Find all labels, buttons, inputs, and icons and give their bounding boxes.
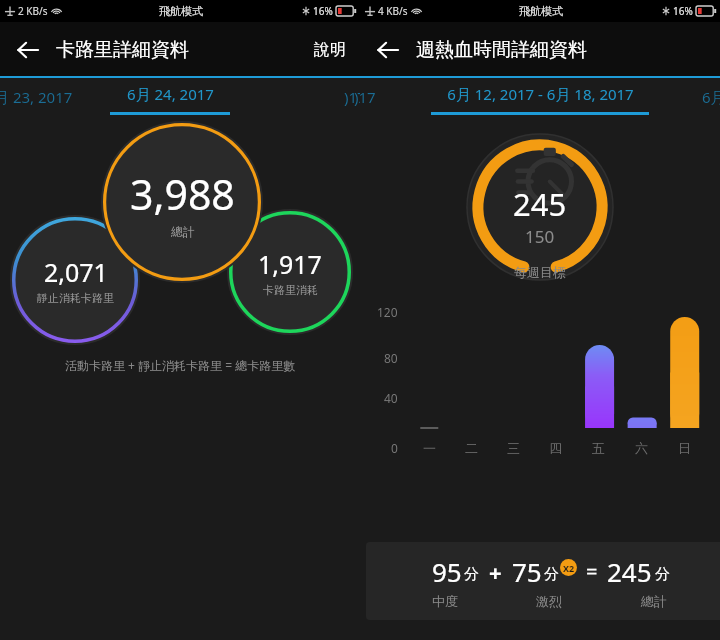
staticText: 16%: [313, 4, 333, 18]
staticText: 週熱血時間詳細資料: [416, 38, 587, 62]
button[interactable]: 6月 24, 2017: [95, 78, 245, 124]
staticText: 日: [678, 440, 691, 456]
staticText: 95: [432, 554, 462, 589]
button[interactable]: 3,988: [102, 122, 262, 282]
staticText: 245: [607, 554, 652, 589]
staticText: 一: [423, 440, 436, 456]
staticText: 六: [635, 440, 648, 456]
staticText: 飛航模式: [519, 4, 563, 18]
staticText: 月 23, 2017: [0, 87, 73, 107]
staticText: =: [586, 558, 598, 585]
button[interactable]: 2,071: [11, 216, 139, 344]
staticText: 靜止消耗卡路里: [37, 291, 114, 305]
staticText: 150: [525, 225, 555, 248]
button[interactable]: 245: [465, 132, 615, 282]
staticText: 二: [465, 440, 478, 456]
staticText: 每週目標: [514, 264, 566, 280]
staticText: 2,071: [44, 255, 108, 289]
staticText: 四: [549, 440, 562, 456]
button[interactable]: Back: [360, 22, 416, 78]
staticText: 三: [507, 440, 520, 456]
staticText: )17: [344, 87, 366, 107]
button[interactable]: 95: [366, 542, 720, 620]
staticText: X2: [563, 562, 575, 574]
staticText: 6月: [702, 87, 720, 107]
staticText: 6月 12, 2017 - 6月 18, 2017: [447, 84, 634, 104]
staticText: 75: [512, 554, 542, 589]
staticText: 五: [592, 440, 605, 456]
staticText: 3,988: [130, 166, 235, 222]
staticText: 40: [384, 390, 398, 406]
staticText: 總計: [171, 224, 195, 239]
staticText: 1,917: [258, 247, 322, 281]
staticText: 16%: [673, 4, 693, 18]
button[interactable]: 1,917: [228, 210, 352, 334]
staticText: 卡路里詳細資料: [56, 38, 189, 62]
staticText: 中度: [432, 593, 458, 609]
staticText: 活動卡路里 + 靜止消耗卡路里 = 總卡路里數: [65, 357, 296, 373]
staticText: )17: [354, 87, 376, 107]
staticText: 2 KB/s: [18, 4, 48, 18]
staticText: 卡路里消耗: [263, 283, 318, 297]
staticText: 6月 24, 2017: [127, 84, 214, 104]
staticText: 120: [377, 304, 398, 320]
staticText: 激烈: [536, 593, 562, 609]
staticText: +: [489, 557, 502, 587]
staticText: 說明: [314, 40, 346, 60]
staticText: 分: [464, 565, 479, 584]
staticText: 80: [384, 350, 398, 366]
staticText: 245: [513, 183, 567, 225]
button[interactable]: Back: [0, 22, 56, 78]
staticText: 總計: [641, 593, 667, 609]
button[interactable]: 說明: [300, 22, 360, 78]
staticText: 0: [391, 440, 398, 456]
staticText: 飛航模式: [159, 4, 203, 18]
button[interactable]: 6月 12, 2017 - 6月 18, 2017: [420, 78, 660, 124]
staticText: 分: [655, 565, 670, 584]
staticText: 4 KB/s: [378, 4, 408, 18]
staticText: 分: [544, 565, 559, 584]
